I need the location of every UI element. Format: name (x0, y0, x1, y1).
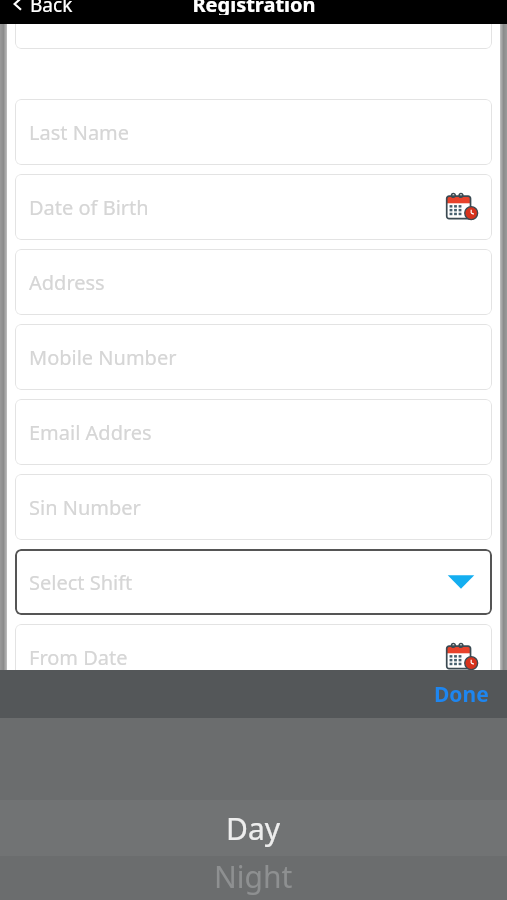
button[interactable]: Date of Birth (15, 174, 492, 240)
button[interactable]: Address (15, 249, 492, 315)
button[interactable]: Sin Number (15, 474, 492, 540)
staticText: Mobile Number (29, 344, 177, 371)
staticText: Back (30, 0, 73, 16)
staticText: Sin Number (29, 494, 141, 521)
staticText: Last Name (29, 119, 130, 146)
button[interactable]: Email Addres (15, 399, 492, 465)
button[interactable]: Back (0, 0, 85, 16)
button[interactable]: Middle Name (15, 0, 492, 49)
button[interactable]: Pick date (444, 715, 478, 749)
button[interactable]: From Date (15, 624, 492, 690)
staticText: Day (226, 808, 281, 849)
button[interactable]: To Date (15, 699, 492, 765)
button[interactable]: Night (0, 856, 507, 900)
staticText: From Date (29, 644, 128, 671)
staticText: Date of Birth (29, 194, 149, 221)
staticText: Select Shift (29, 569, 133, 596)
button[interactable]: Pick date (444, 640, 478, 674)
staticText: Done (434, 680, 489, 708)
button[interactable]: Done (416, 670, 507, 718)
button[interactable]: Last Name (15, 99, 492, 165)
staticText: Email Addres (29, 419, 152, 446)
button[interactable]: Open shift list (444, 565, 478, 599)
staticText: Registration (192, 0, 316, 15)
staticText: Address (29, 269, 105, 296)
button[interactable]: Pick date (444, 190, 478, 224)
staticText: Night (214, 856, 293, 897)
button[interactable]: Day (0, 800, 507, 856)
button[interactable]: Select Shift (15, 549, 492, 615)
button[interactable]: Mobile Number (15, 324, 492, 390)
staticText: Middle Name (29, 3, 155, 30)
